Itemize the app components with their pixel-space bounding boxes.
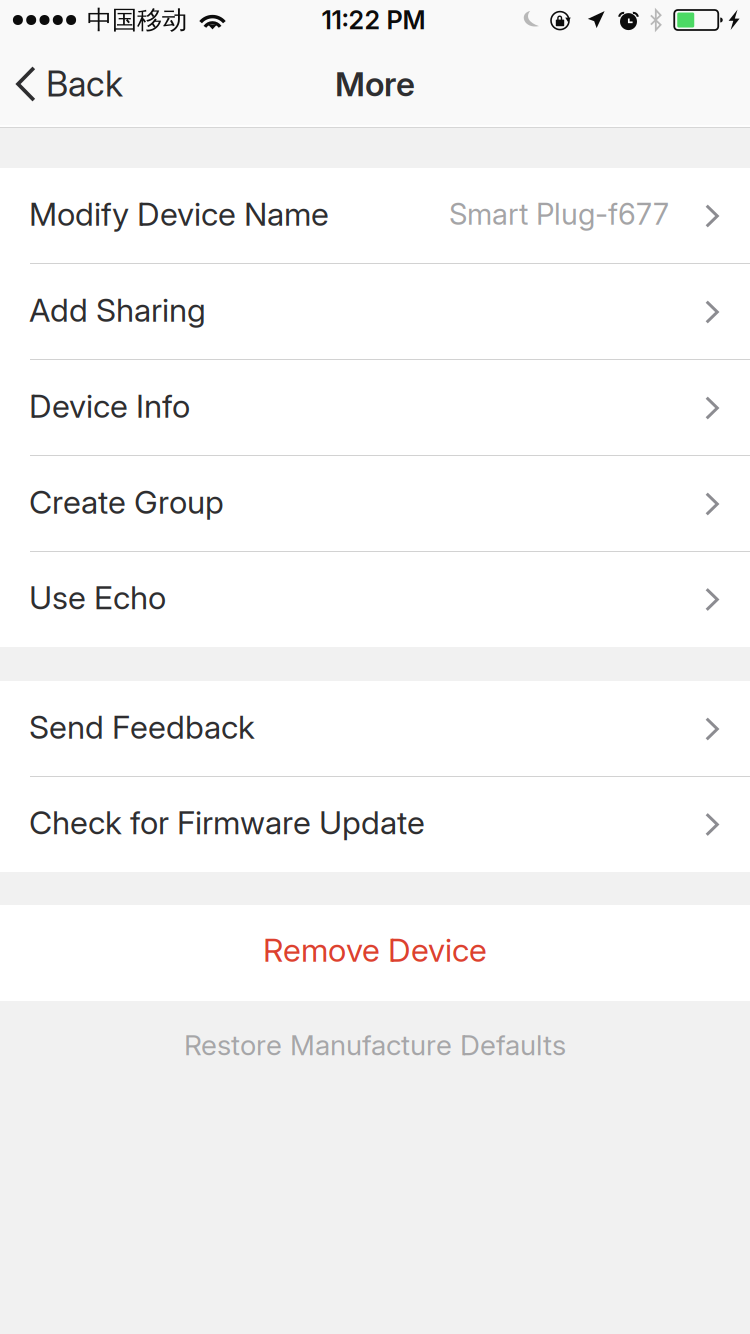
staticText: Check for Firmware Update [29, 803, 425, 842]
staticText: Create Group [29, 483, 224, 521]
button[interactable]: Check for Firmware Update [0, 777, 750, 872]
staticText: Back [46, 63, 123, 105]
staticText: Modify Device Name [29, 195, 329, 233]
staticText: 11:22 PM [321, 5, 425, 35]
staticText: Smart Plug-f677 [449, 196, 669, 232]
staticText: Remove Device [263, 931, 487, 969]
staticText: Device Info [29, 387, 190, 425]
button[interactable]: Remove Device [0, 905, 750, 1001]
staticText: Restore Manufacture Defaults [184, 1028, 566, 1062]
button[interactable]: Device Info [0, 360, 750, 456]
button[interactable]: Back [0, 42, 141, 126]
staticText: 中国移动 [87, 4, 187, 36]
button[interactable]: Restore Manufacture Defaults [0, 1001, 750, 1081]
button[interactable]: Add Sharing [0, 264, 750, 360]
staticText: More [335, 64, 415, 104]
button[interactable]: Send Feedback [0, 681, 750, 777]
staticText: Send Feedback [29, 708, 255, 746]
staticText: Add Sharing [29, 291, 206, 329]
button[interactable]: Create Group [0, 456, 750, 552]
button[interactable]: Use Echo [0, 552, 750, 647]
button[interactable]: Modify Device Name [0, 168, 750, 264]
staticText: Use Echo [29, 578, 166, 617]
